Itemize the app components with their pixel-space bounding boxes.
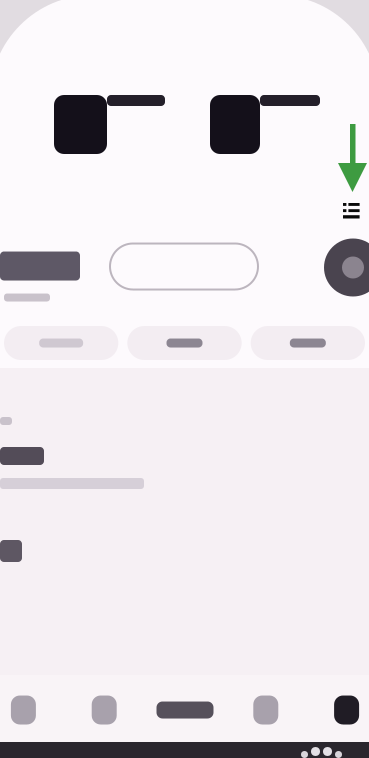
button[interactable] [4, 326, 118, 360]
button[interactable]: Profile [324, 238, 369, 296]
button[interactable]: Tab 3 [145, 688, 225, 732]
button[interactable]: Tab 4 [225, 688, 306, 732]
button[interactable]: Tab 1 [0, 688, 64, 732]
button[interactable] [251, 326, 365, 360]
button[interactable]: Tab 2 [64, 688, 145, 732]
button[interactable] [127, 326, 242, 360]
button[interactable]: Reading list [343, 203, 360, 218]
button[interactable]: Tab 5 [306, 688, 369, 732]
